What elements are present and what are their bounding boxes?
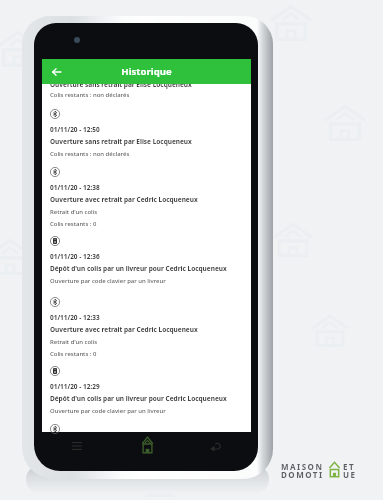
button[interactable]: Ouverture sans retrait par Elise Locquen…: [42, 80, 251, 110]
staticText: Retrait d'un colis: [50, 338, 98, 346]
staticText: Colis restants : 0: [50, 350, 97, 358]
staticText: Ouverture sans retrait par Elise Locquen…: [50, 137, 192, 146]
staticText: 01/11/20 - 12:33: [50, 313, 100, 322]
staticText: Ouverture avec retrait par Cedric Locque…: [50, 195, 198, 204]
staticText: Dépôt d'un colis par un livreur pour Ced…: [50, 264, 227, 273]
staticText: Colis restants : non déclarés: [50, 150, 130, 158]
staticText: UE: [343, 469, 357, 480]
button[interactable]: 01/11/20 - 12:36: [42, 232, 251, 293]
staticText: ET: [343, 461, 356, 472]
staticText: DOMOTI: [281, 469, 324, 480]
staticText: Ouverture avec retrait par Cedric Locque…: [50, 325, 198, 334]
staticText: MAISON: [281, 461, 324, 472]
staticText: Dépôt d'un colis par un livreur pour Ced…: [50, 394, 227, 403]
staticText: Colis restants : non déclarés: [50, 91, 130, 99]
staticText: Historique: [42, 65, 251, 78]
button[interactable]: Back: [44, 59, 69, 84]
staticText: 01/11/20 - 12:50: [50, 125, 100, 134]
staticText: 01/11/20 - 12:38: [50, 183, 100, 192]
button[interactable]: 01/11/20 - 12:50: [42, 105, 251, 163]
button[interactable]: Home: [137, 434, 158, 456]
button[interactable]: 01/11/20 - 12:29: [42, 362, 251, 421]
staticText: Ouverture par code clavier par un livreu…: [50, 407, 166, 415]
staticText: 01/11/20 - 12:29: [50, 382, 100, 391]
button[interactable]: 01/11/20 - 12:38: [42, 163, 251, 232]
button[interactable]: 01/11/20 - 12:33: [42, 293, 251, 362]
staticText: Retrait d'un colis: [50, 208, 98, 216]
button[interactable]: [42, 420, 251, 436]
button[interactable]: Recent apps: [67, 436, 87, 456]
staticText: Ouverture sans retrait par Elise Locquen…: [50, 80, 192, 89]
button[interactable]: Back: [205, 436, 225, 456]
staticText: Colis restants : 0: [50, 220, 97, 228]
staticText: 01/11/20 - 12:36: [50, 252, 100, 261]
staticText: Ouverture par code clavier par un livreu…: [50, 277, 166, 285]
